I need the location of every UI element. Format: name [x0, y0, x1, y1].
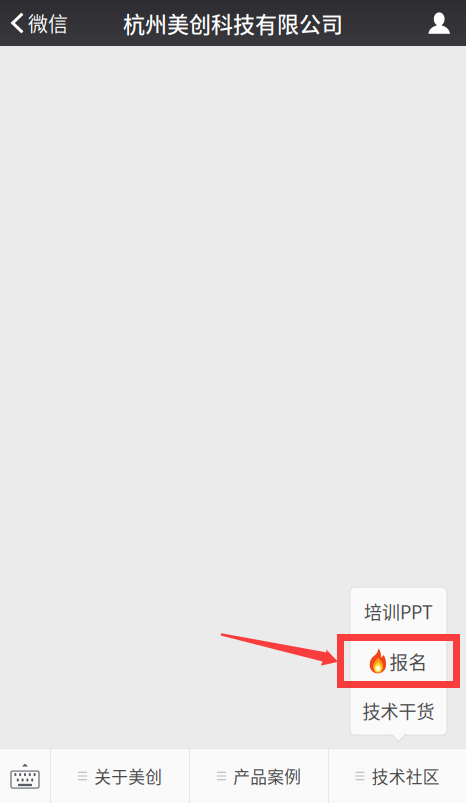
- staticText: 报名: [389, 647, 427, 674]
- staticText: 技术社区: [372, 764, 440, 788]
- button[interactable]: 关于美创: [51, 749, 189, 803]
- staticText: 杭州美创科技有限公司: [123, 7, 343, 39]
- button[interactable]: 报名: [350, 637, 447, 685]
- button[interactable]: 培训PPT: [350, 587, 447, 636]
- button[interactable]: 技术社区: [329, 749, 466, 803]
- button[interactable]: 微信: [0, 0, 78, 46]
- button[interactable]: Contact: [414, 0, 466, 46]
- button[interactable]: 技术干货: [350, 686, 447, 735]
- staticText: 微信: [28, 8, 68, 37]
- staticText: 技术干货: [362, 698, 434, 724]
- staticText: 关于美创: [94, 764, 162, 788]
- button[interactable]: 产品案例: [190, 749, 328, 803]
- staticText: 产品案例: [233, 764, 301, 788]
- staticText: 培训PPT: [364, 598, 433, 624]
- button[interactable]: Keyboard: [0, 749, 50, 803]
